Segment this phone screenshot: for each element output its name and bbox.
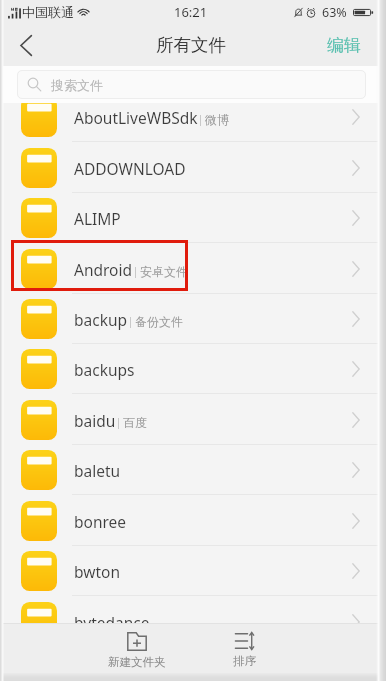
staticText: 安卓文件: [140, 264, 188, 279]
staticText: 编辑: [327, 35, 361, 56]
button[interactable]: backups: [0, 344, 386, 394]
staticText: bonree: [74, 511, 127, 532]
staticText: 16:21: [174, 3, 208, 21]
staticText: 百度: [123, 415, 147, 430]
staticText: 搜索文件: [51, 77, 103, 93]
button[interactable]: ADDOWNLOAD: [0, 143, 386, 193]
staticText: 排序: [233, 654, 256, 668]
button[interactable]: bonree: [0, 496, 386, 546]
button[interactable]: bwton: [0, 546, 386, 596]
button[interactable]: backup: [0, 294, 386, 344]
button[interactable]: baidu: [0, 395, 386, 445]
button[interactable]: baletu: [0, 445, 386, 495]
button[interactable]: Back: [0, 24, 52, 66]
staticText: bytedance: [74, 612, 150, 623]
button[interactable]: bytedance: [0, 597, 386, 623]
button[interactable]: 排序: [208, 632, 280, 668]
staticText: baletu: [74, 460, 121, 481]
staticText: ALIMP: [74, 208, 121, 229]
staticText: backup: [74, 309, 128, 330]
staticText: backups: [74, 359, 135, 380]
button[interactable]: 搜索文件: [17, 70, 366, 99]
button[interactable]: 新建文件夹: [101, 632, 173, 669]
staticText: 中国联通: [22, 4, 74, 20]
staticText: 新建文件夹: [108, 655, 166, 669]
staticText: AboutLiveWBSdk: [74, 107, 198, 128]
staticText: 微博: [205, 112, 229, 127]
staticText: 所有文件: [156, 34, 226, 56]
staticText: baidu: [74, 410, 116, 431]
staticText: Android: [74, 259, 133, 280]
staticText: 63%: [322, 4, 347, 21]
button[interactable]: ALIMP: [0, 193, 386, 243]
staticText: 备份文件: [135, 314, 183, 329]
button[interactable]: Android: [0, 244, 386, 294]
button[interactable]: 编辑: [311, 24, 386, 66]
staticText: ADDOWNLOAD: [74, 158, 186, 179]
button[interactable]: AboutLiveWBSdk: [0, 103, 386, 142]
staticText: bwton: [74, 561, 120, 582]
